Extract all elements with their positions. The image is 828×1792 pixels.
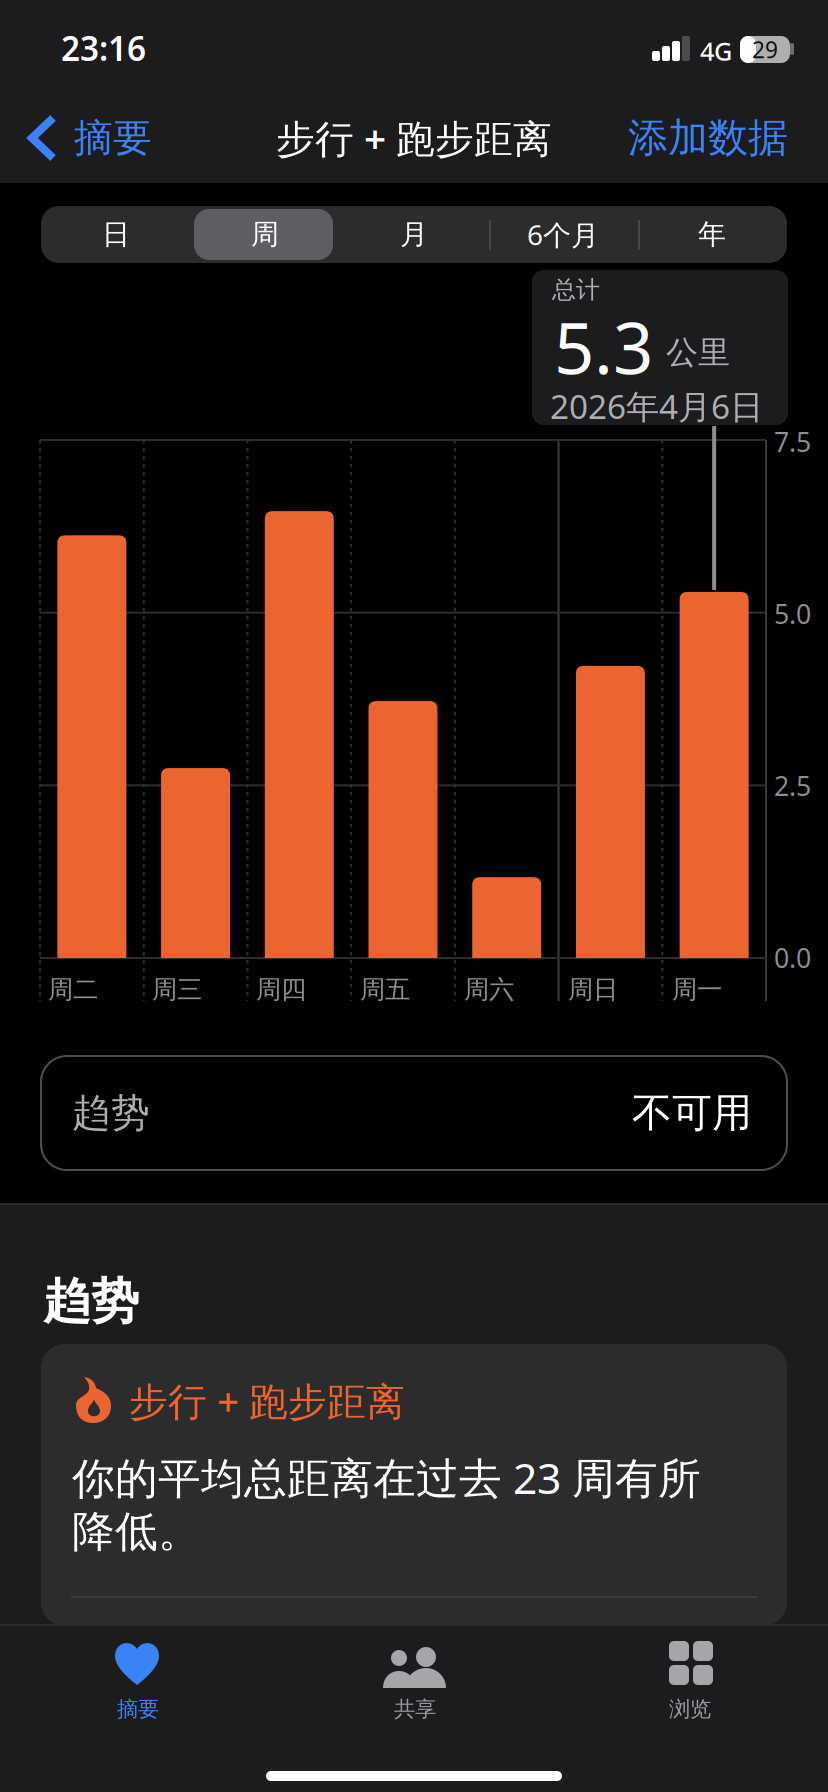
staticText: 公里: [666, 333, 730, 372]
button[interactable]: 日: [41, 206, 190, 263]
staticText: 5.0: [774, 596, 811, 631]
button[interactable]: 摘要: [0, 1624, 276, 1734]
button[interactable]: 共享: [276, 1624, 552, 1734]
staticText: 0.0: [774, 940, 811, 975]
button[interactable]: 步行 + 跑步距离: [41, 1344, 787, 1626]
staticText: 步行 + 跑步距离: [129, 1375, 405, 1426]
staticText: 周六: [464, 974, 514, 1005]
button[interactable]: 6个月: [488, 206, 637, 263]
staticText: 周四: [256, 974, 306, 1005]
staticText: 周: [251, 217, 279, 252]
staticText: 周五: [360, 974, 410, 1005]
staticText: 摘要: [117, 1696, 159, 1722]
staticText: 6个月: [527, 216, 599, 253]
button[interactable]: 趋势: [41, 1056, 787, 1170]
staticText: 总计: [552, 275, 600, 304]
button[interactable]: 周: [190, 206, 339, 263]
button[interactable]: 添加数据: [608, 91, 828, 185]
button[interactable]: 浏览: [552, 1624, 828, 1734]
staticText: 5.3: [554, 300, 653, 394]
button[interactable]: 摘要: [0, 91, 170, 185]
staticText: 周三: [152, 974, 202, 1005]
staticText: 不可用: [632, 1088, 752, 1137]
staticText: 周一: [672, 974, 722, 1005]
staticText: 你的平均总距离在过去 23 周有所降低。: [72, 1449, 701, 1558]
button[interactable]: 月: [339, 206, 488, 263]
staticText: 日: [102, 217, 130, 252]
staticText: 步行 + 跑步距离: [276, 112, 552, 164]
staticText: 浏览: [669, 1696, 711, 1722]
staticText: 趋势: [72, 1089, 150, 1137]
staticText: 摘要: [74, 114, 152, 162]
staticText: 7.5: [774, 424, 811, 459]
staticText: 趋势: [43, 1272, 139, 1331]
staticText: 29: [752, 34, 778, 64]
button[interactable]: 年: [637, 206, 786, 263]
staticText: 年: [698, 217, 726, 252]
staticText: 添加数据: [628, 113, 788, 162]
staticText: 2026年4月6日: [550, 384, 763, 428]
staticText: 月: [400, 217, 428, 252]
staticText: 23:16: [61, 26, 146, 70]
staticText: 2.5: [774, 768, 811, 803]
staticText: 周二: [48, 974, 98, 1005]
staticText: 共享: [394, 1696, 436, 1722]
staticText: 周日: [568, 974, 618, 1005]
staticText: 4G: [700, 34, 732, 68]
